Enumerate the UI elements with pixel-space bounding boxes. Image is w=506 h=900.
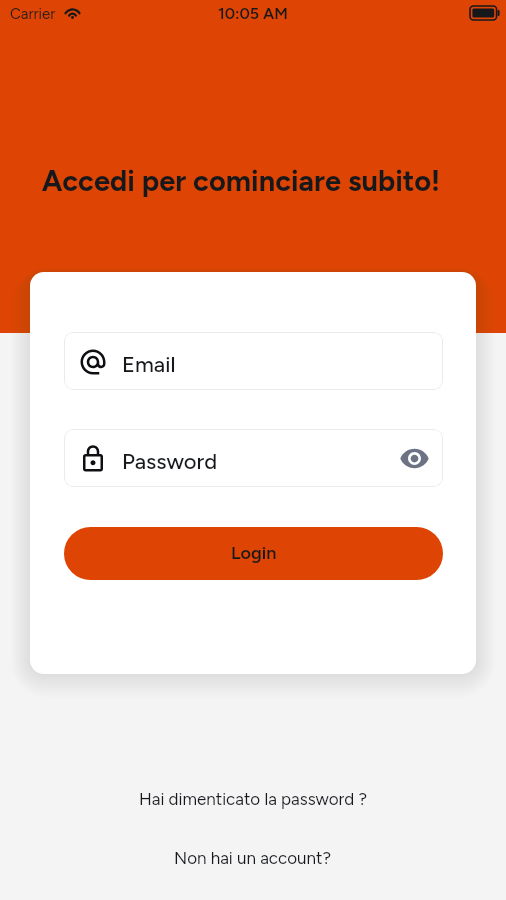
staticText: Email [122, 351, 176, 377]
button[interactable]: Login [64, 527, 443, 580]
button[interactable]: Hai dimenticato la password ? [129, 784, 378, 814]
staticText: Hai dimenticato la password ? [139, 789, 368, 809]
staticText: Carrier [10, 5, 56, 23]
staticText: Accedi per cominciare subito! [0, 163, 494, 198]
staticText: Login [231, 542, 277, 564]
staticText: 10:05 AM [218, 4, 288, 23]
button[interactable]: Show password [391, 435, 437, 481]
button[interactable]: Email [64, 332, 443, 390]
button[interactable]: Password [64, 429, 443, 487]
button[interactable]: Non hai un account? [164, 843, 342, 873]
staticText: Non hai un account? [174, 848, 332, 868]
staticText: Password [122, 448, 218, 474]
